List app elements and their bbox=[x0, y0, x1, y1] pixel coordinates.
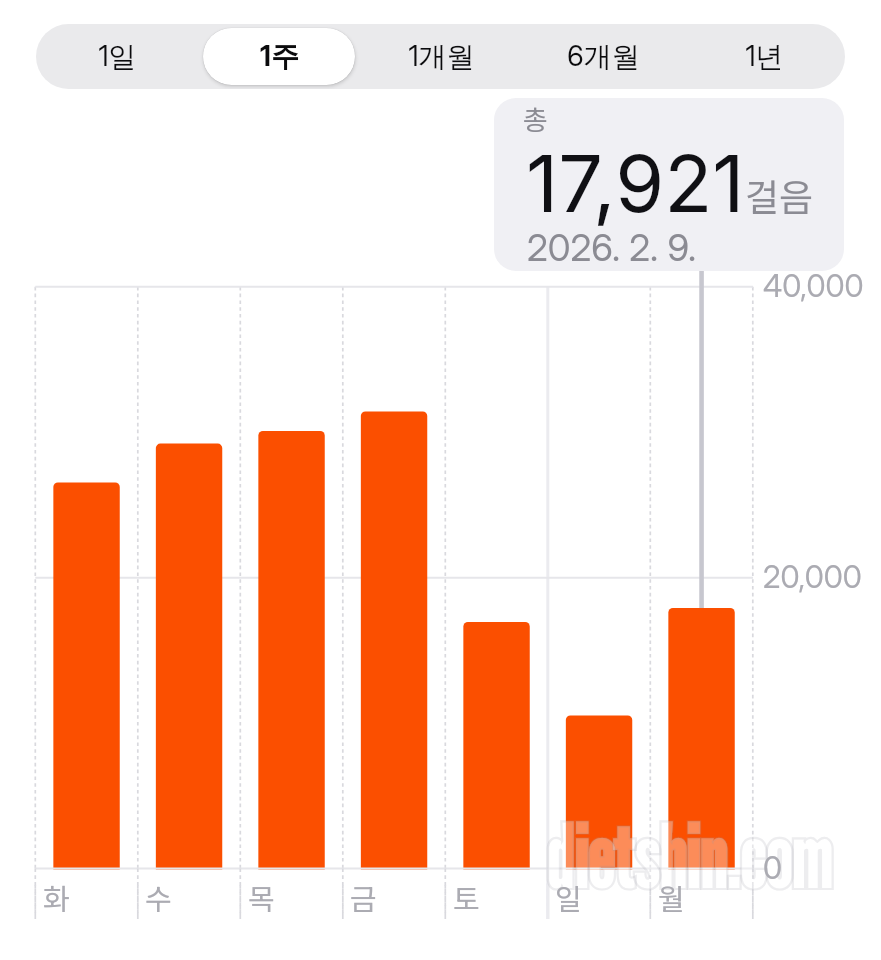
button[interactable]: 1년 bbox=[689, 28, 840, 85]
button[interactable]: 1일 bbox=[41, 28, 193, 85]
staticText: 1일 bbox=[98, 39, 137, 74]
staticText: 금 bbox=[350, 876, 377, 918]
staticText: 2026. 2. 9. bbox=[527, 225, 697, 270]
staticText: 1주 bbox=[260, 39, 299, 74]
staticText: 1개월 bbox=[408, 39, 475, 74]
staticText: 40,000 bbox=[763, 267, 864, 305]
staticText: 1년 bbox=[745, 39, 784, 74]
staticText: 화 bbox=[43, 876, 70, 918]
button[interactable]: 6개월 bbox=[527, 28, 679, 85]
staticText: 17,921 bbox=[526, 135, 745, 231]
staticText: 총 bbox=[523, 99, 548, 138]
button[interactable]: 1개월 bbox=[365, 28, 517, 85]
staticText: dietshin.com bbox=[546, 806, 832, 909]
staticText: 일 bbox=[555, 876, 582, 918]
staticText: 6개월 bbox=[567, 39, 640, 74]
button[interactable]: 총 bbox=[494, 98, 844, 271]
button[interactable]: 1주 bbox=[203, 28, 355, 85]
staticText: 수 bbox=[145, 876, 172, 918]
staticText: dietshin.com bbox=[546, 806, 832, 909]
staticText: 걸음 bbox=[745, 168, 814, 222]
staticText: 토 bbox=[453, 876, 480, 918]
staticText: 0 bbox=[763, 849, 783, 887]
staticText: 월 bbox=[658, 876, 685, 918]
staticText: 목 bbox=[248, 876, 275, 918]
staticText: 20,000 bbox=[763, 558, 862, 596]
